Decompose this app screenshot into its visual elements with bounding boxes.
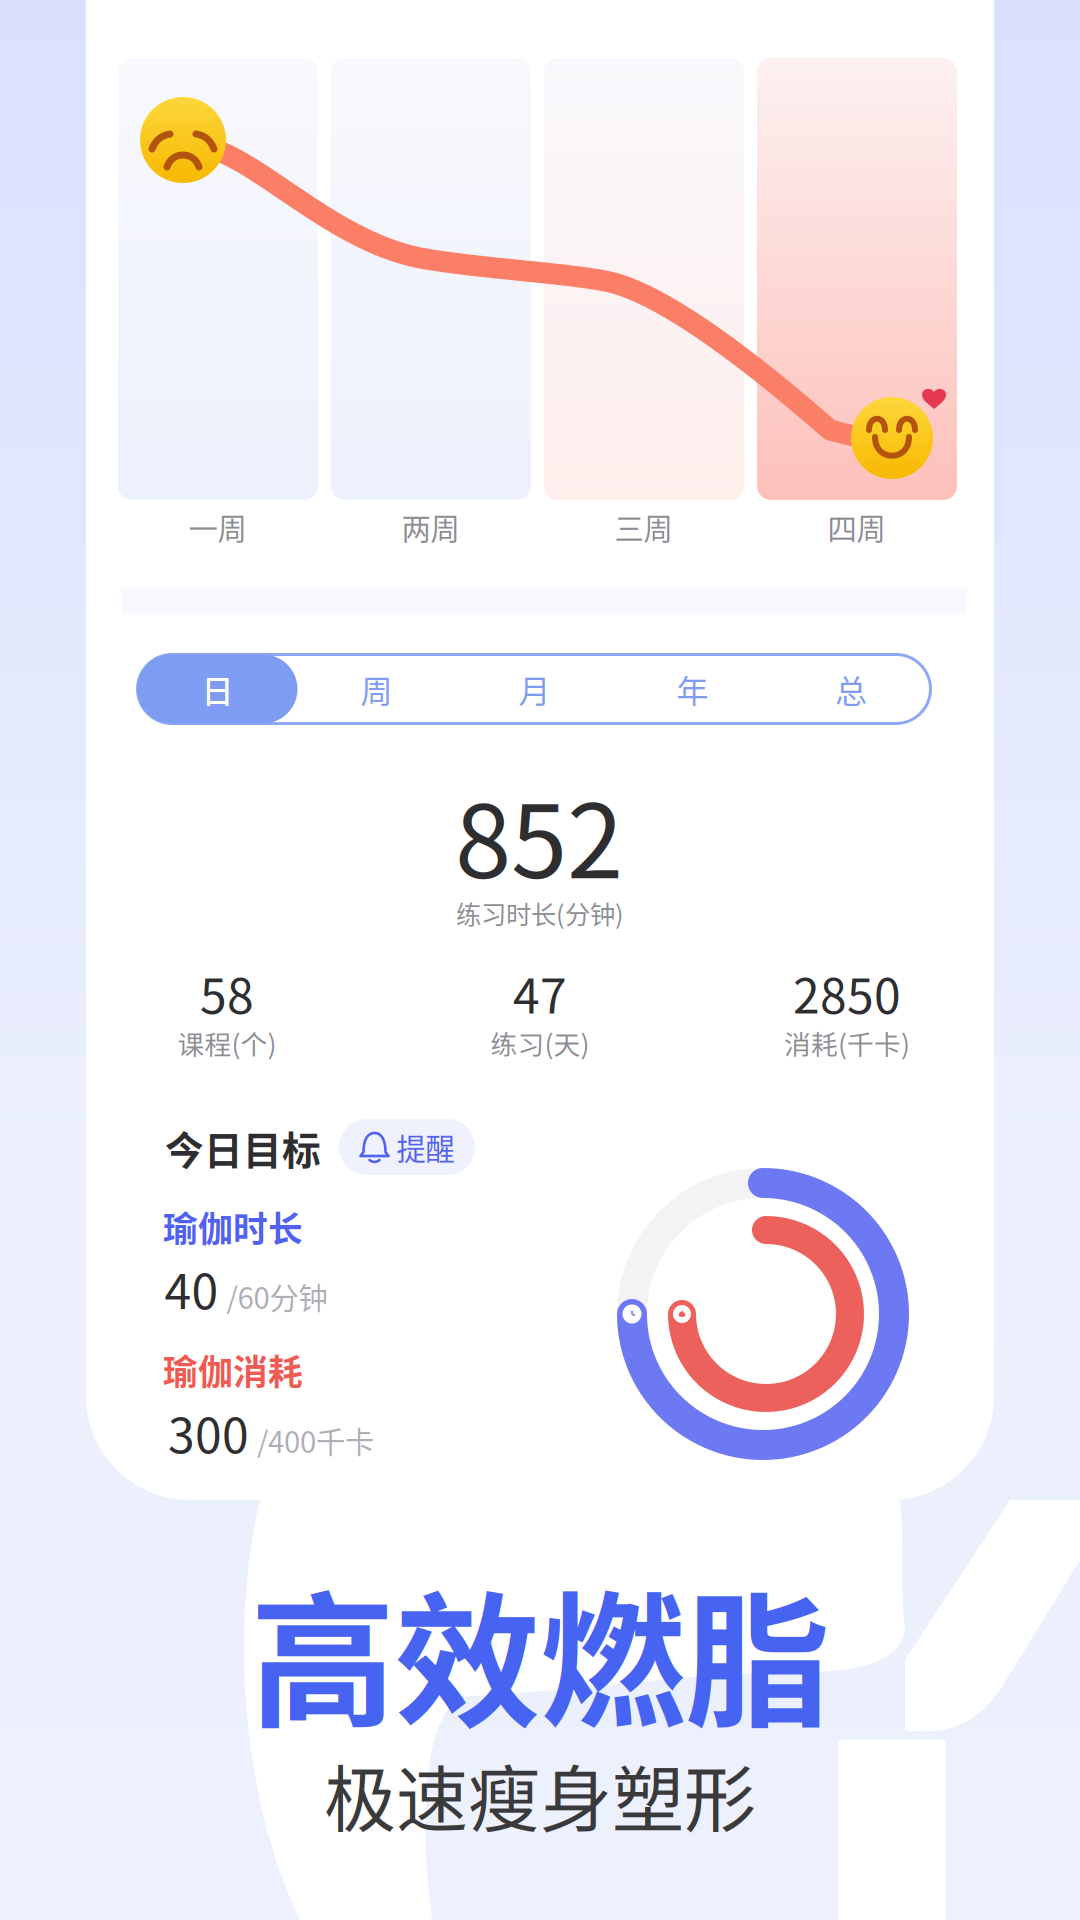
staticText: 练习(天)	[490, 1023, 589, 1062]
staticText: 总	[835, 666, 867, 712]
staticText: 极速瘦身塑形	[324, 1742, 756, 1846]
staticText: 一周	[188, 506, 246, 548]
staticText: 练习时长(分钟)	[456, 895, 624, 931]
staticText: 日	[201, 666, 233, 712]
staticText: 月	[518, 666, 550, 712]
staticText: 高效燃脂	[250, 1547, 830, 1757]
staticText: 提醒	[396, 1126, 454, 1168]
staticText: 瑜伽时长	[163, 1202, 303, 1252]
staticText: 40	[164, 1253, 218, 1323]
staticText: 2850	[793, 958, 901, 1027]
staticText: 课程(个)	[177, 1023, 276, 1062]
button[interactable]: 年	[613, 654, 771, 723]
button[interactable]: 周	[297, 654, 455, 723]
staticText: 年	[676, 666, 708, 712]
staticText: 两周	[401, 506, 459, 548]
staticText: /400千卡	[257, 1419, 374, 1461]
staticText: 瑜伽消耗	[163, 1345, 303, 1395]
staticText: 852	[455, 761, 623, 907]
button[interactable]: 日	[137, 654, 297, 723]
staticText: 三周	[614, 506, 672, 548]
button[interactable]: 提醒	[339, 1119, 475, 1175]
staticText: 58	[200, 958, 254, 1027]
staticText: 47	[513, 958, 567, 1027]
staticText: 周	[360, 666, 392, 712]
staticText: 今日目标	[165, 1120, 321, 1176]
staticText: /60分钟	[226, 1275, 327, 1317]
staticText: 四周	[827, 506, 885, 548]
button[interactable]: 月	[455, 654, 613, 723]
button[interactable]: 总	[771, 654, 930, 723]
staticText: 消耗(千卡)	[784, 1023, 910, 1062]
staticText: 300	[168, 1397, 249, 1467]
